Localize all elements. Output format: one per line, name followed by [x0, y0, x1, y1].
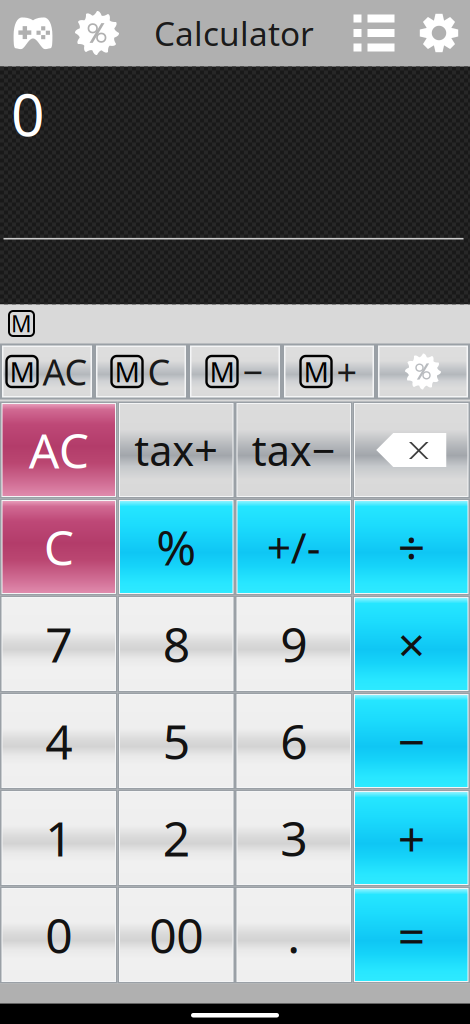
staticText: 6	[280, 709, 307, 773]
staticText: 5	[163, 709, 190, 773]
button[interactable]: ÷	[352, 498, 470, 595]
button[interactable]: +/-	[235, 498, 352, 595]
staticText: M	[209, 353, 234, 390]
button[interactable]: AC	[0, 401, 117, 498]
staticText: AC	[29, 418, 89, 482]
staticText: M	[303, 353, 328, 390]
staticText: +/-	[267, 519, 321, 575]
staticText: tax+	[134, 423, 218, 477]
staticText: %	[156, 515, 196, 579]
staticText: 0	[11, 74, 45, 152]
button[interactable]: Backspace	[352, 401, 470, 498]
staticText: Calculator	[154, 11, 314, 55]
button[interactable]: Games	[0, 0, 66, 66]
button[interactable]: M	[94, 343, 188, 399]
button[interactable]: 8	[117, 595, 235, 692]
staticText: 9	[280, 612, 307, 676]
staticText: =	[398, 903, 425, 967]
button[interactable]: −	[352, 692, 470, 789]
staticText: tax−	[252, 423, 336, 477]
button[interactable]: 6	[235, 692, 352, 789]
button[interactable]: M	[188, 343, 282, 399]
button[interactable]: M	[282, 343, 376, 399]
button[interactable]: ×	[352, 595, 470, 692]
button[interactable]: 5	[117, 692, 235, 789]
button[interactable]: C	[0, 498, 117, 595]
staticText: 3	[280, 806, 307, 870]
button[interactable]: Settings	[408, 0, 470, 66]
staticText: 2	[163, 806, 190, 870]
button[interactable]: 4	[0, 692, 117, 789]
staticText: −	[242, 348, 263, 395]
staticText: 1	[45, 806, 72, 870]
button[interactable]: 0	[0, 886, 117, 983]
button[interactable]: =	[352, 886, 470, 983]
staticText: .	[287, 903, 300, 967]
staticText: +	[336, 348, 357, 395]
staticText: 4	[45, 709, 72, 773]
staticText: AC	[42, 348, 87, 395]
staticText: ÷	[398, 515, 425, 579]
button[interactable]: tax+	[117, 401, 235, 498]
staticText: C	[44, 515, 74, 579]
button[interactable]: 7	[0, 595, 117, 692]
staticText: +	[398, 806, 425, 870]
staticText: 8	[163, 612, 190, 676]
button[interactable]: Tax rate	[66, 0, 128, 66]
staticText: M	[11, 308, 32, 338]
button[interactable]: 9	[235, 595, 352, 692]
staticText: 0	[45, 903, 72, 967]
button[interactable]: tax−	[235, 401, 352, 498]
staticText: 7	[45, 612, 72, 676]
button[interactable]: M	[0, 343, 94, 399]
staticText: M	[114, 353, 139, 390]
button[interactable]: .	[235, 886, 352, 983]
button[interactable]: 00	[117, 886, 235, 983]
staticText: −	[398, 709, 425, 773]
button[interactable]: %	[117, 498, 235, 595]
staticText: 00	[149, 903, 203, 967]
staticText: C	[147, 348, 170, 395]
button[interactable]: 2	[117, 789, 235, 886]
button[interactable]: History	[340, 0, 408, 66]
button[interactable]: +	[352, 789, 470, 886]
button[interactable]	[376, 343, 470, 399]
button[interactable]: 1	[0, 789, 117, 886]
button[interactable]: 3	[235, 789, 352, 886]
staticText: ×	[398, 612, 425, 676]
staticText: M	[9, 353, 34, 390]
